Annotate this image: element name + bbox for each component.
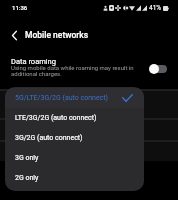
staticText: 3G/2G (auto connect) [15, 134, 133, 142]
button[interactable]: 3G/2G (auto connect) [5, 128, 144, 148]
staticText: Using mobile data while roaming may resu… [11, 64, 134, 78]
staticText: 5G/LTE/3G/2G (auto connect) [15, 94, 122, 102]
staticText: 11:36 [12, 4, 28, 11]
button[interactable]: 2G only [5, 168, 144, 188]
staticText: Data roaming [11, 57, 56, 66]
button[interactable]: Back [0, 21, 29, 50]
button[interactable]: Data roaming toggle [149, 63, 167, 74]
staticText: 3G only [15, 154, 133, 162]
button[interactable]: LTE/3G/2G (auto connect) [5, 108, 144, 128]
staticText: 2G only [15, 174, 133, 182]
button[interactable]: Data roaming [0, 50, 178, 86]
button[interactable]: 3G only [5, 148, 144, 168]
staticText: LTE/3G/2G (auto connect) [15, 114, 133, 122]
button[interactable]: 5G/LTE/3G/2G (auto connect) [5, 88, 144, 108]
staticText: 41% [149, 4, 162, 12]
staticText: Mobile networks [25, 30, 89, 40]
